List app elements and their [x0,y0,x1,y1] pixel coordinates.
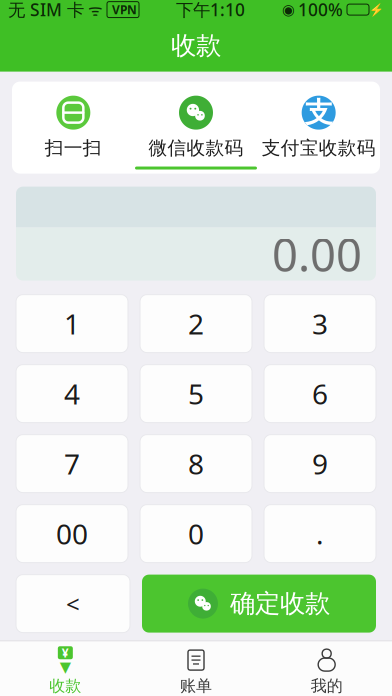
button[interactable]: 我的 [261,648,392,696]
staticText: 收款 [49,676,81,696]
staticText: 1 [64,305,80,342]
staticText: 确定收款 [230,588,330,619]
staticText: 扫一扫 [45,137,102,159]
button[interactable]: 扫一扫 [12,86,135,169]
staticText: 0 [188,515,204,552]
button[interactable]: 3 [264,295,376,353]
staticText: 7 [64,445,80,482]
staticText: < [66,588,80,620]
staticText: ⚡ [369,3,384,16]
button[interactable]: 5 [140,365,252,423]
staticText: 下午1:10 [176,0,245,21]
staticText: 我的 [311,676,343,696]
staticText: 2 [188,305,204,342]
button[interactable]: 8 [140,435,252,493]
staticText: 6 [312,375,328,412]
staticText: 100% [298,0,343,21]
staticText: 支 [305,95,333,130]
staticText: ▼ [60,659,71,675]
staticText: 00 [56,515,88,552]
staticText: 9 [312,445,328,482]
button[interactable]: 2 [140,295,252,353]
button[interactable]: 退格 [16,575,130,633]
button[interactable]: 7 [16,435,128,493]
staticText: 5 [188,375,204,412]
staticText: ᯤ [84,0,103,20]
staticText: ¥ [62,645,69,661]
staticText: ◉ [282,1,295,18]
staticText: 支付宝收款码 [262,137,376,159]
staticText: 4 [64,375,80,412]
staticText: VPN [109,2,137,17]
button[interactable]: 1 [16,295,128,353]
button[interactable]: 确定收款 [142,575,376,633]
button[interactable]: 支 [257,86,380,169]
staticText: 无 SIM 卡 [8,0,84,21]
staticText: . [316,515,324,552]
staticText: 微信收款码 [148,137,243,159]
button[interactable]: ¥ [0,648,131,696]
button[interactable]: 9 [264,435,376,493]
button[interactable]: 4 [16,365,128,423]
button[interactable]: 微信收款码 [135,86,257,169]
staticText: 8 [188,445,204,482]
button[interactable]: 00 [16,505,128,563]
button[interactable]: 账单 [131,648,261,696]
staticText: 账单 [180,676,212,696]
button[interactable]: 0 [140,505,252,563]
staticText: 0.00 [272,224,362,284]
staticText: 收款 [171,30,221,61]
button[interactable]: 6 [264,365,376,423]
staticText: 3 [312,305,328,342]
button[interactable]: . [264,505,376,563]
